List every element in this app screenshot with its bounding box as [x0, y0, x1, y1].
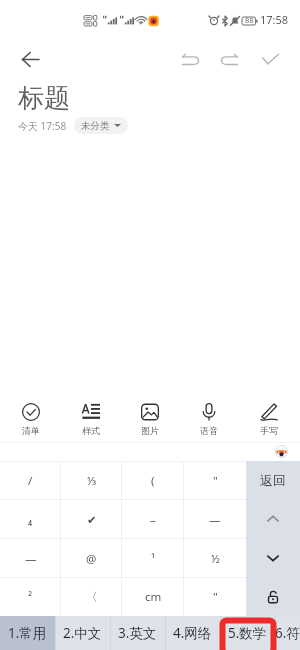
- button[interactable]: ¹: [122, 539, 184, 578]
- button[interactable]: Redo: [215, 45, 244, 74]
- button[interactable]: ": [184, 461, 246, 500]
- staticText: ½: [211, 551, 220, 567]
- button[interactable]: ⅓: [61, 461, 122, 500]
- staticText: 3.英文: [118, 624, 157, 642]
- staticText: ₄: [28, 512, 33, 528]
- button[interactable]: Undo: [176, 45, 205, 74]
- button[interactable]: —: [0, 539, 61, 578]
- staticText: 6.符: [275, 624, 300, 642]
- button[interactable]: 4.网络: [165, 616, 220, 650]
- button[interactable]: Page down: [246, 538, 300, 577]
- staticText: 手写: [260, 425, 278, 436]
- button[interactable]: ²: [0, 578, 61, 616]
- staticText: 〈: [86, 590, 98, 604]
- staticText: @: [86, 551, 97, 567]
- button[interactable]: Back: [14, 43, 46, 75]
- staticText: 语音: [200, 425, 218, 436]
- staticText: cm: [145, 589, 162, 605]
- staticText: ": [213, 589, 218, 605]
- staticText: ²: [28, 589, 33, 605]
- button[interactable]: Page up: [246, 499, 300, 538]
- button[interactable]: —: [184, 500, 246, 539]
- staticText: 88: [245, 15, 254, 25]
- button[interactable]: ": [184, 578, 246, 616]
- staticText: (: [151, 473, 155, 489]
- button[interactable]: ✔: [61, 500, 122, 539]
- staticText: 5.数学: [228, 624, 267, 642]
- staticText: ": [213, 473, 218, 489]
- staticText: 17:58: [260, 12, 289, 27]
- button[interactable]: Done: [256, 45, 284, 73]
- button[interactable]: 手写: [241, 396, 297, 442]
- button[interactable]: /: [0, 461, 61, 500]
- staticText: 1.常用: [8, 624, 47, 642]
- button[interactable]: Input method logo: [275, 445, 288, 458]
- staticText: 清单: [22, 425, 40, 436]
- staticText: 今天 17:58: [18, 119, 67, 133]
- staticText: ¹: [151, 551, 156, 567]
- staticText: 样式: [82, 425, 100, 436]
- staticText: 标题: [18, 82, 70, 115]
- staticText: —: [25, 551, 37, 567]
- staticText: 返回: [260, 472, 286, 488]
- staticText: 图片: [141, 425, 159, 436]
- button[interactable]: 〈: [61, 578, 122, 616]
- button[interactable]: Lock: [246, 577, 300, 616]
- button[interactable]: 样式: [63, 396, 119, 442]
- staticText: ✔: [87, 513, 97, 526]
- button[interactable]: ½: [184, 539, 246, 578]
- button[interactable]: 清单: [3, 396, 59, 442]
- button[interactable]: ₄: [0, 500, 61, 539]
- button[interactable]: Return: [246, 461, 300, 499]
- button[interactable]: 未分类: [74, 117, 128, 134]
- button[interactable]: (: [122, 461, 184, 500]
- button[interactable]: 1.常用: [0, 616, 55, 650]
- button[interactable]: –: [122, 500, 184, 539]
- button[interactable]: 6.符: [275, 616, 300, 650]
- button[interactable]: cm: [122, 578, 184, 616]
- staticText: 未分类: [81, 120, 110, 132]
- staticText: —: [209, 512, 221, 528]
- staticText: 2.中文: [63, 624, 102, 642]
- button[interactable]: 图片: [122, 396, 178, 442]
- button[interactable]: 语音: [181, 396, 237, 442]
- button[interactable]: 2.中文: [55, 616, 110, 650]
- staticText: ⅓: [87, 473, 97, 489]
- button[interactable]: 5.数学: [220, 616, 275, 650]
- staticText: /: [28, 473, 33, 489]
- button[interactable]: 3.英文: [110, 616, 165, 650]
- button[interactable]: @: [61, 539, 122, 578]
- staticText: –: [150, 512, 156, 528]
- staticText: 4.网络: [173, 624, 212, 642]
